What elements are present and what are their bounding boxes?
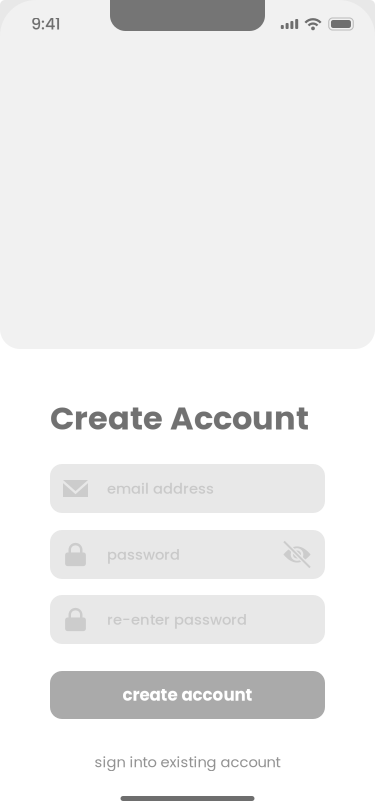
staticText: re-enter password xyxy=(107,609,247,630)
staticText: create account xyxy=(122,683,252,707)
staticText: 9:41 xyxy=(31,13,61,35)
staticText: password xyxy=(107,544,180,565)
staticText: Create Account xyxy=(50,396,309,441)
button[interactable]: create account xyxy=(50,671,325,719)
button[interactable]: sign into existing account xyxy=(50,749,325,775)
staticText: email address xyxy=(107,478,214,499)
staticText: sign into existing account xyxy=(94,752,280,772)
